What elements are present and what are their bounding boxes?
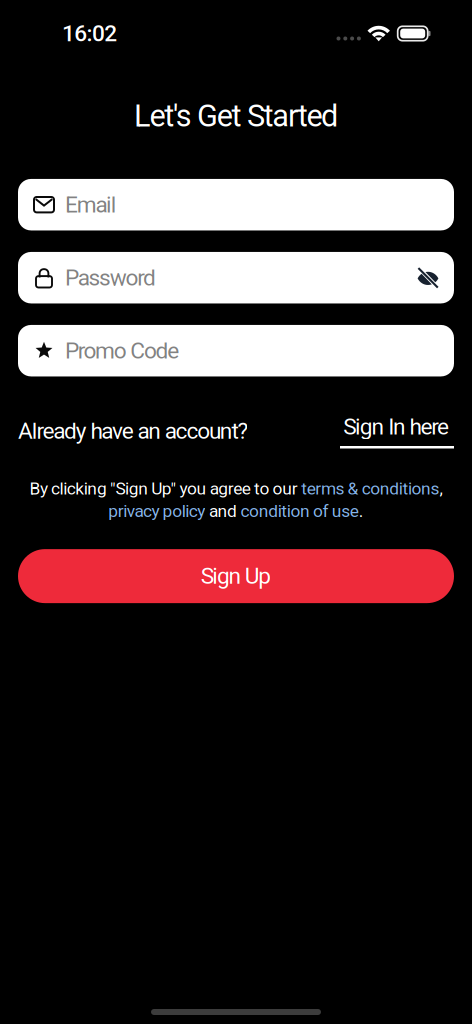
staticText: Already have an account? — [18, 418, 248, 444]
button[interactable]: Email — [18, 179, 454, 230]
staticText: . — [359, 501, 364, 521]
staticText: Password — [65, 264, 156, 291]
staticText: privacy policy — [108, 501, 205, 521]
button[interactable]: terms & conditions — [301, 478, 440, 499]
staticText: , — [440, 478, 443, 499]
staticText: By clicking "Sign Up" you agree to our — [29, 478, 301, 499]
staticText: Sign Up — [201, 563, 271, 589]
button[interactable]: privacy policy — [108, 501, 205, 521]
staticText: Email — [65, 191, 117, 218]
staticText: condition of use — [240, 501, 359, 521]
staticText: Sign In here — [343, 413, 449, 440]
button[interactable]: Sign Up — [18, 549, 454, 603]
staticText: and — [205, 501, 241, 521]
button[interactable]: Sign In here — [340, 413, 454, 448]
button[interactable]: Promo Code — [18, 325, 454, 376]
staticText: Let's Get Started — [134, 98, 338, 134]
button[interactable]: Password — [18, 252, 454, 303]
staticText: Promo Code — [65, 337, 179, 364]
staticText: 16:02 — [62, 20, 117, 47]
button[interactable]: condition of use — [240, 501, 359, 521]
staticText: terms & conditions — [301, 478, 440, 499]
